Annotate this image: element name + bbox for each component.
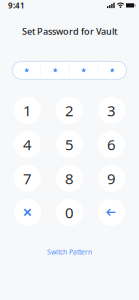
button[interactable]: 3 — [98, 97, 125, 124]
staticText: 7 — [23, 168, 32, 188]
button[interactable]: 0 — [56, 199, 83, 226]
staticText: 8 — [65, 168, 74, 188]
staticText: Set Password for Vault — [22, 25, 117, 37]
staticText: 5 — [65, 134, 74, 154]
button[interactable]: Switch Pattern — [47, 247, 92, 256]
staticText: 1 — [23, 100, 32, 120]
button[interactable]: 6 — [98, 131, 125, 158]
button[interactable]: 8 — [56, 165, 83, 192]
staticText: 0 — [65, 202, 74, 222]
staticText: 4 — [23, 134, 32, 154]
button[interactable]: 4 — [14, 131, 41, 158]
staticText: 9:41 — [8, 0, 25, 11]
button[interactable]: 7 — [14, 165, 41, 192]
button[interactable]: 5 — [56, 131, 83, 158]
button[interactable]: 1 — [14, 97, 41, 124]
staticText: 3 — [107, 100, 116, 120]
button[interactable]: Cancel — [14, 199, 41, 226]
staticText: 9 — [107, 168, 116, 188]
button[interactable]: 2 — [56, 97, 83, 124]
button[interactable]: Delete — [98, 199, 125, 226]
staticText: 6 — [107, 134, 116, 154]
staticText: Switch Pattern — [47, 247, 92, 256]
staticText: 2 — [65, 100, 74, 120]
button[interactable]: 9 — [98, 165, 125, 192]
